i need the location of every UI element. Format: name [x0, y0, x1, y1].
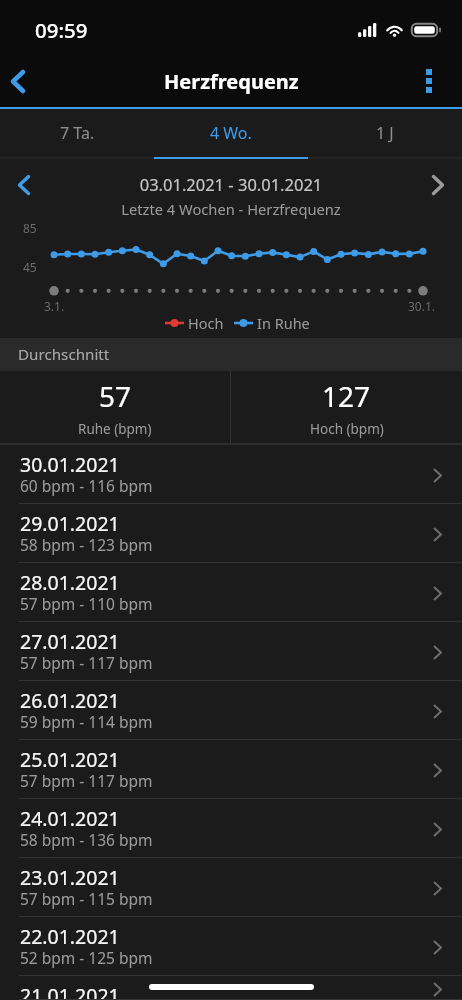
staticText: 57 bpm - 110 bpm: [20, 593, 153, 614]
staticText: 30.1.: [408, 298, 436, 314]
staticText: 60 bpm - 116 bpm: [20, 475, 153, 496]
staticText: Hoch (bpm): [310, 420, 384, 438]
staticText: 85: [23, 220, 37, 236]
staticText: 52 bpm - 125 bpm: [20, 947, 153, 968]
staticText: 26.01.2021: [20, 687, 120, 714]
button[interactable]: Back: [0, 55, 35, 107]
staticText: 1 J: [376, 122, 394, 144]
button[interactable]: 23.01.2021: [0, 858, 462, 917]
staticText: 45: [23, 259, 37, 275]
staticText: 03.01.2021 - 30.01.2021: [0, 173, 462, 195]
staticText: 23.01.2021: [20, 864, 120, 891]
button[interactable]: 1 J: [308, 109, 462, 157]
staticText: 09:59: [35, 16, 88, 44]
staticText: In Ruhe: [257, 313, 310, 333]
button[interactable]: 29.01.2021: [0, 504, 462, 563]
staticText: Hoch: [188, 313, 224, 333]
staticText: 58 bpm - 136 bpm: [20, 829, 153, 850]
staticText: 21.01.2021: [20, 982, 120, 1000]
staticText: 58 bpm - 123 bpm: [20, 534, 153, 555]
button[interactable]: 21.01.2021: [0, 976, 462, 1000]
button[interactable]: 127: [231, 371, 462, 443]
button[interactable]: 7 Ta.: [0, 109, 154, 157]
staticText: 30.01.2021: [20, 451, 120, 478]
staticText: 127: [322, 377, 371, 415]
staticText: 57 bpm - 117 bpm: [20, 770, 153, 791]
staticText: 7 Ta.: [60, 122, 95, 144]
staticText: 29.01.2021: [20, 510, 120, 537]
button[interactable]: 26.01.2021: [0, 681, 462, 740]
button[interactable]: 24.01.2021: [0, 799, 462, 858]
button[interactable]: Previous period: [0, 166, 48, 204]
staticText: 57 bpm - 115 bpm: [20, 888, 153, 909]
button[interactable]: 57: [0, 371, 230, 443]
button[interactable]: 22.01.2021: [0, 917, 462, 976]
staticText: 28.01.2021: [20, 569, 120, 596]
button[interactable]: Next period: [414, 166, 462, 204]
staticText: 27.01.2021: [20, 628, 120, 655]
staticText: 3.1.: [44, 298, 65, 314]
button[interactable]: 4 Wo.: [154, 109, 308, 157]
button[interactable]: 25.01.2021: [0, 740, 462, 799]
button[interactable]: 30.01.2021: [0, 445, 462, 504]
staticText: 4 Wo.: [210, 122, 252, 144]
staticText: 24.01.2021: [20, 805, 120, 832]
staticText: 57: [99, 377, 132, 415]
button[interactable]: 28.01.2021: [0, 563, 462, 622]
staticText: 25.01.2021: [20, 746, 120, 773]
staticText: 59 bpm - 114 bpm: [20, 711, 153, 732]
staticText: Herzfrequenz: [164, 68, 299, 95]
button[interactable]: More options: [396, 55, 462, 107]
staticText: Durchschnitt: [18, 344, 110, 365]
button[interactable]: 27.01.2021: [0, 622, 462, 681]
staticText: Letzte 4 Wochen - Herzfrequenz: [0, 199, 462, 219]
staticText: 22.01.2021: [20, 923, 120, 950]
staticText: 57 bpm - 117 bpm: [20, 652, 153, 673]
staticText: Ruhe (bpm): [78, 420, 152, 438]
